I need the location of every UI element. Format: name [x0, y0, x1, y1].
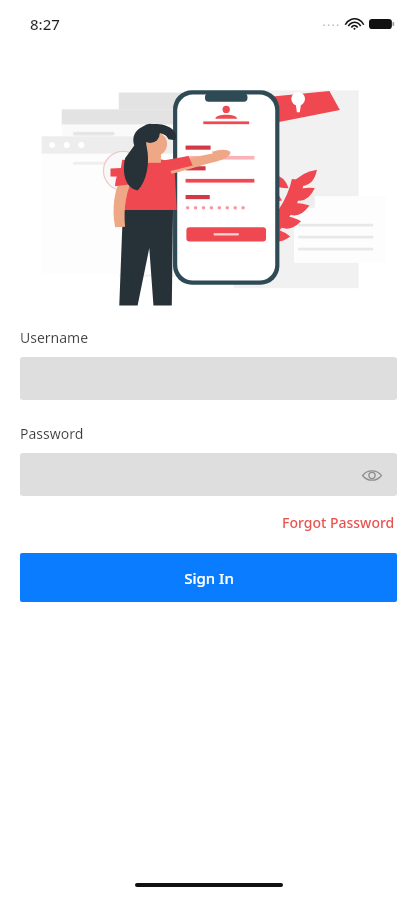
- staticText: Username: [20, 328, 89, 347]
- staticText: Sign In: [184, 568, 234, 588]
- button[interactable]: Show password: [20, 453, 397, 496]
- staticText: 8:27: [30, 14, 60, 34]
- button[interactable]: Sign In: [20, 553, 397, 602]
- staticText: Password: [20, 424, 84, 443]
- staticText: Forgot Password: [282, 513, 395, 532]
- button[interactable]: Forgot Password: [280, 510, 397, 535]
- button[interactable]: Show password: [359, 462, 385, 488]
